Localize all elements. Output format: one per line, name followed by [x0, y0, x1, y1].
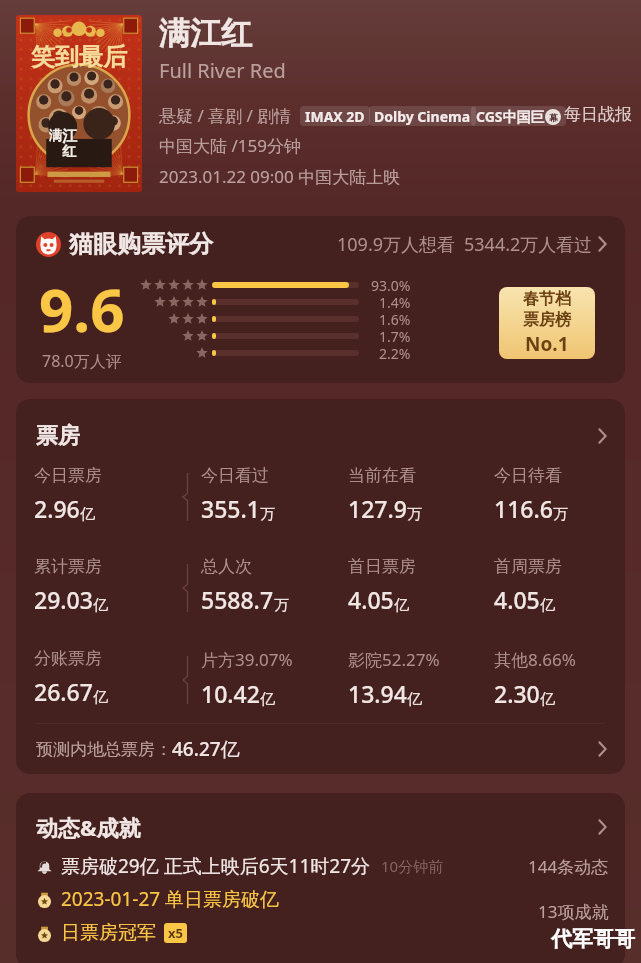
other: More [598, 741, 607, 757]
staticText: 1.4% [379, 293, 411, 310]
staticText: 春节档 [523, 289, 571, 309]
staticText: 116.6 [494, 493, 553, 524]
other: More [598, 428, 607, 444]
other: Achievement [36, 925, 53, 942]
button[interactable]: 票房 [16, 399, 625, 472]
staticText: 其他8.66% [494, 648, 576, 671]
staticText: 今日待看 [494, 465, 562, 486]
button[interactable]: 春节档 [499, 287, 595, 359]
staticText: 亿 [260, 690, 275, 709]
staticText: 日票房冠军 [61, 921, 156, 945]
staticText: 悬疑 / 喜剧 / 剧情 [159, 104, 292, 127]
staticText: 猫眼购票评分 [69, 229, 213, 259]
staticText: 万 [553, 505, 568, 524]
button[interactable]: CGS中国巨 [471, 106, 566, 126]
staticText: 动态&成就 [36, 812, 141, 842]
staticText: 9.6 [39, 268, 125, 350]
staticText: 29.03 [34, 584, 93, 615]
staticText: 5344.2万人看过 [464, 232, 593, 257]
button[interactable]: 动态&成就 [16, 793, 625, 861]
staticText: 亿 [80, 505, 95, 524]
staticText: 万 [407, 505, 422, 524]
staticText: Full River Red [159, 57, 286, 84]
staticText: 93.0% [371, 276, 411, 293]
staticText: 亿 [93, 688, 108, 707]
other: More [598, 819, 607, 835]
staticText: 票房 [36, 422, 80, 450]
staticText: 127.9 [348, 493, 407, 524]
staticText: 预测内地总票房： [36, 739, 172, 760]
staticText: Dolby Cinema [374, 107, 471, 126]
staticText: 亿 [540, 596, 555, 615]
staticText: 代军哥哥 [551, 926, 635, 952]
staticText: 144条动态 [528, 855, 609, 878]
staticText: 4.05 [348, 584, 394, 615]
staticText: 首日票房 [348, 556, 416, 577]
button[interactable]: Maoyan [16, 216, 625, 272]
button[interactable]: Movie poster [16, 15, 142, 192]
staticText: 票房榜 [523, 310, 571, 330]
staticText: No.1 [525, 331, 569, 357]
staticText: CGS中国巨 [476, 107, 545, 126]
staticText: x5 [168, 924, 183, 942]
staticText: 2.96 [34, 493, 80, 524]
staticText: 2.30 [494, 678, 540, 709]
staticText: 13项成就 [538, 900, 609, 923]
staticText: 分账票房 [34, 648, 102, 669]
staticText: 每日战报 [564, 104, 632, 125]
staticText: 78.0万人评 [42, 350, 122, 372]
staticText: 今日看过 [201, 465, 269, 486]
button[interactable]: Notification [16, 850, 625, 882]
staticText: 江 [62, 127, 77, 146]
staticText: 26.67 [34, 676, 93, 707]
button[interactable]: Dolby Cinema [369, 106, 476, 126]
staticText: 13.94 [348, 678, 407, 709]
other: Notification [36, 858, 53, 875]
button[interactable]: Achievement [16, 883, 625, 915]
staticText: 亿 [407, 690, 422, 709]
staticText: 5588.7 [201, 584, 274, 615]
staticText: 万 [260, 505, 275, 524]
staticText: 2.2% [379, 344, 411, 361]
other: Maoyan [36, 232, 61, 257]
staticText: 355.1 [201, 493, 260, 524]
staticText: 亿 [540, 690, 555, 709]
staticText: 当前在看 [348, 465, 416, 486]
staticText: IMAX 2D [305, 107, 365, 126]
button[interactable]: IMAX 2D [300, 106, 370, 126]
staticText: 累计票房 [34, 556, 102, 577]
staticText: 幕 [549, 112, 558, 123]
staticText: 万 [274, 596, 289, 615]
staticText: 1.6% [379, 310, 411, 327]
staticText: 票房破29亿 正式上映后6天11时27分 [61, 853, 371, 879]
staticText: 笑到最后 [31, 42, 127, 72]
other: More [598, 236, 607, 252]
staticText: 亿 [93, 596, 108, 615]
staticText: 今日票房 [34, 465, 102, 486]
staticText: 1.7% [379, 327, 411, 344]
staticText: 片方39.07% [201, 648, 293, 671]
staticText: 影院52.27% [348, 648, 440, 671]
staticText: 满江红 [159, 14, 252, 53]
staticText: 2023-01-27 单日票房破亿 [61, 886, 280, 912]
staticText: 中国大陆 /159分钟 [159, 134, 301, 157]
staticText: 亿 [394, 596, 409, 615]
staticText: 109.9万人想看 [337, 232, 456, 257]
staticText: 10分钟前 [381, 856, 444, 876]
staticText: 首周票房 [494, 556, 562, 577]
staticText: 满 [49, 127, 62, 143]
staticText: 总人次 [201, 556, 252, 577]
staticText: 10.42 [201, 678, 260, 709]
staticText: 2023.01.22 09:00 中国大陆上映 [159, 165, 401, 188]
staticText: 46.27亿 [172, 736, 240, 762]
other: Achievement [36, 891, 53, 908]
staticText: 红 [62, 143, 76, 161]
staticText: 4.05 [494, 584, 540, 615]
button[interactable]: 预测内地总票房： [16, 724, 625, 774]
button[interactable]: Achievement [16, 917, 625, 949]
